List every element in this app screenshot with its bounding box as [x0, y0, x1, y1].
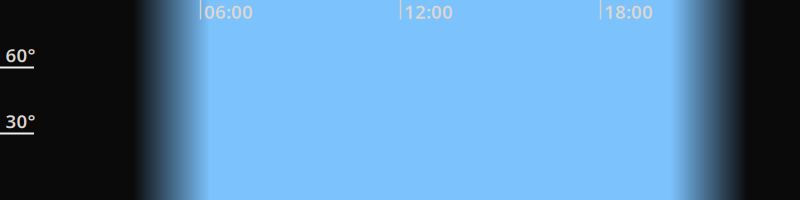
- staticText: 30°: [5, 108, 35, 133]
- staticText: 06:00: [204, 0, 253, 24]
- staticText: 18:00: [604, 0, 653, 24]
- staticText: 60°: [5, 42, 35, 67]
- staticText: 12:00: [404, 0, 453, 24]
